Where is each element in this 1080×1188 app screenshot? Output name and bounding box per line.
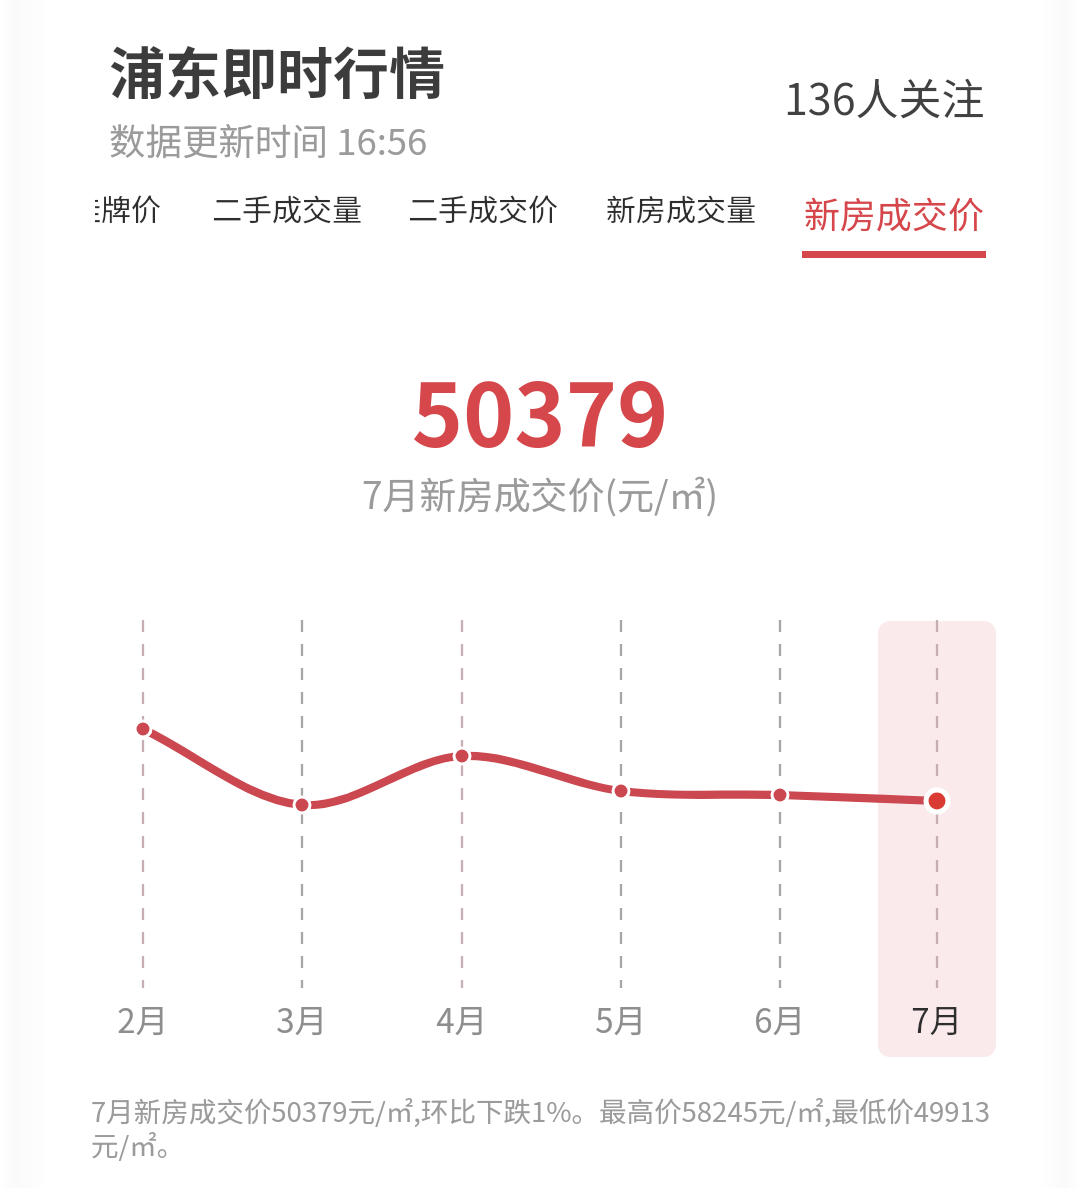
staticText: 新房成交价 [802, 186, 986, 238]
staticText: 二手成交量 [207, 186, 367, 229]
staticText: 7月新房成交价(元/㎡) [0, 466, 1080, 520]
button[interactable]: 新房成交价 [802, 186, 986, 258]
staticText: 2月 [83, 995, 203, 1043]
staticText: 二手成交价 [403, 186, 563, 229]
staticText: 4月 [402, 995, 522, 1043]
button[interactable]: 挂牌价 [95, 186, 164, 251]
staticText: 浦东即时行情 [109, 29, 445, 110]
button[interactable]: 新房成交量 [601, 186, 761, 251]
staticText: 5月 [561, 995, 681, 1043]
button[interactable]: 二手成交价 [403, 186, 563, 251]
staticText: 数据更新时间 16:56 [109, 113, 428, 166]
staticText: 新房成交量 [601, 186, 761, 229]
staticText: 6月 [720, 995, 840, 1043]
button[interactable]: 二手成交量 [207, 186, 367, 251]
staticText: 7月 [877, 995, 997, 1043]
staticText: 50379 [0, 346, 1080, 472]
staticText: 3月 [242, 995, 362, 1043]
staticText: 7月新房成交价50379元/㎡,环比下跌1%。最高价58245元/㎡,最低价49… [91, 1090, 1011, 1164]
other: 新房成交价走势图 [0, 0, 1080, 1188]
button[interactable]: 136人关注 [768, 63, 1000, 129]
staticText: 136人关注 [784, 65, 985, 127]
staticText: 挂牌价 [95, 186, 164, 229]
